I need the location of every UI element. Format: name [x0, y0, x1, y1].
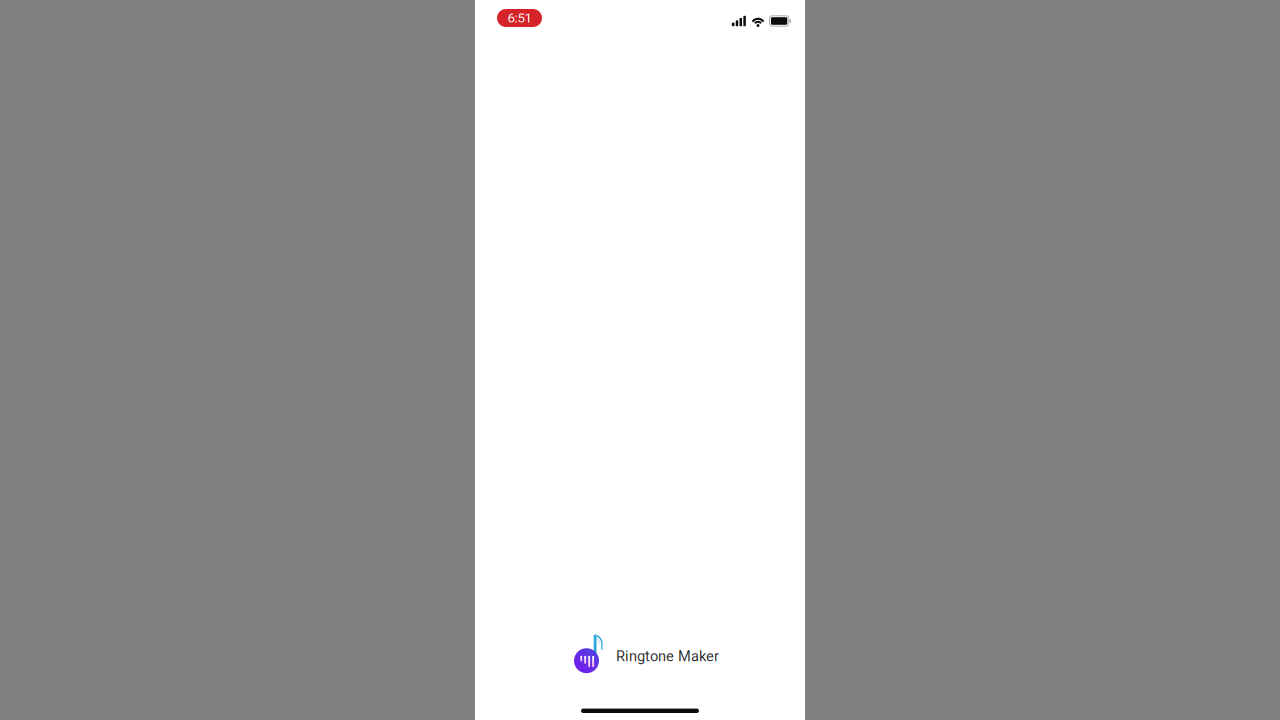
staticText: 6:51	[507, 10, 531, 26]
button[interactable]: Return to call	[497, 9, 542, 27]
staticText: Ringtone Maker	[616, 648, 719, 665]
